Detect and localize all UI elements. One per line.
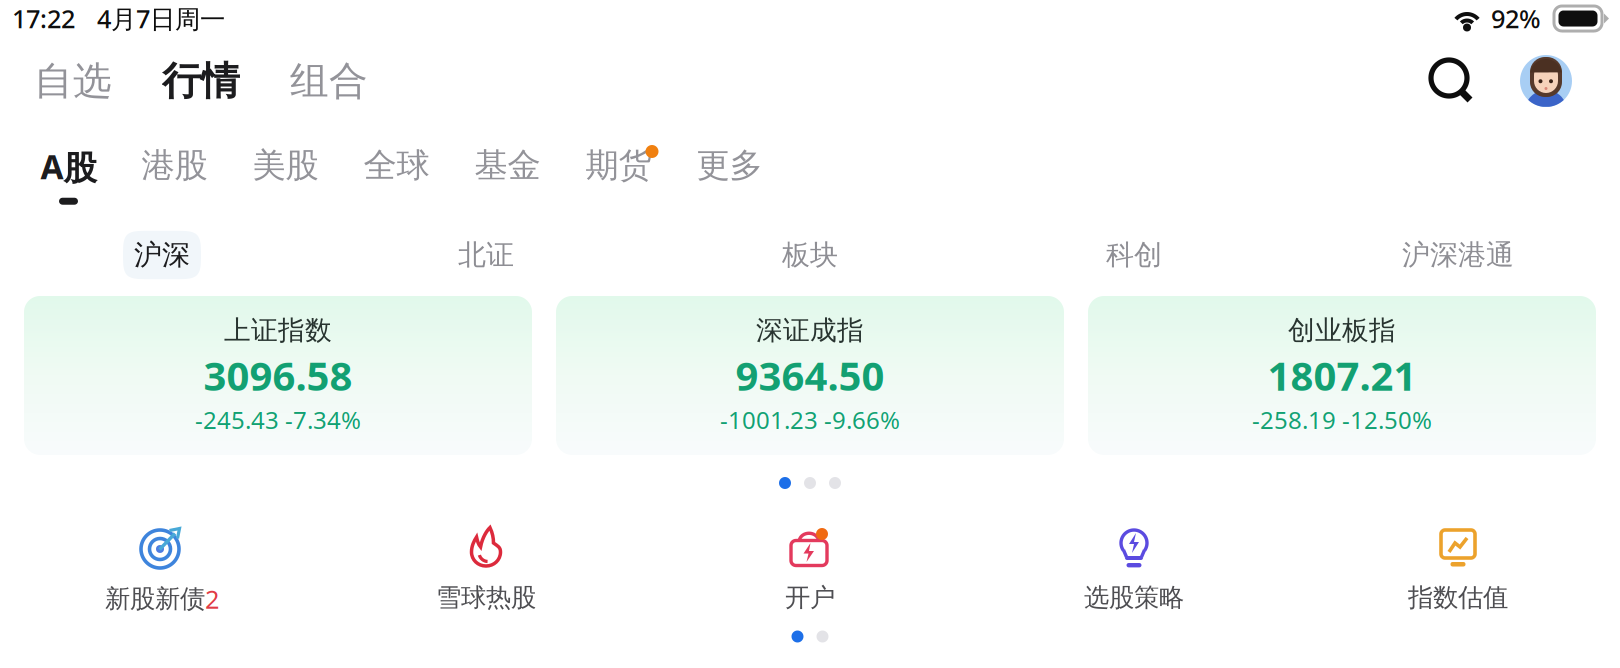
button[interactable]: 北证 — [324, 228, 648, 282]
button[interactable]: 自选 — [34, 49, 112, 113]
button[interactable]: A股 — [18, 113, 119, 205]
button[interactable]: 行情 — [112, 49, 240, 113]
staticText: -245.43 -7.34% — [195, 404, 361, 436]
staticText: 1807.21 — [1267, 349, 1416, 402]
staticText: 港股 — [141, 145, 207, 186]
staticText: 组合 — [290, 57, 368, 105]
button[interactable]: 选股策略 — [972, 520, 1296, 610]
button[interactable]: 科创 — [972, 228, 1296, 282]
button[interactable]: 深证成指 — [556, 296, 1064, 455]
staticText: 北证 — [458, 238, 514, 272]
staticText: 深证成指 — [756, 314, 864, 347]
staticText: 全球 — [363, 145, 429, 186]
staticText: 美股 — [252, 145, 318, 186]
staticText: 行情 — [162, 57, 240, 105]
staticText: 92% — [1491, 2, 1541, 35]
button[interactable]: 沪深 — [0, 228, 324, 282]
staticText: 更多 — [696, 145, 762, 186]
button[interactable]: 期货 — [563, 114, 674, 204]
staticText: 选股策略 — [1084, 582, 1184, 613]
button[interactable]: 美股 — [230, 114, 341, 204]
button[interactable]: 搜索 Search — [1431, 60, 1471, 102]
staticText: 2 — [205, 582, 219, 616]
staticText: 沪深港通 — [1402, 238, 1514, 272]
staticText: 自选 — [34, 57, 112, 105]
staticText: 指数估值 — [1408, 582, 1508, 613]
staticText: 板块 — [782, 238, 838, 272]
staticText: 创业板指 — [1288, 314, 1396, 347]
staticText: 3096.58 — [203, 349, 352, 402]
staticText: 新股新债 — [105, 583, 205, 614]
button[interactable]: 港股 — [119, 114, 230, 204]
staticText: 开户 — [785, 582, 835, 613]
staticText: 4月7日周一 — [97, 2, 225, 35]
button[interactable]: 创业板指 — [1088, 296, 1596, 455]
button[interactable]: 新股新债 — [0, 520, 324, 610]
staticText: 17:22 — [12, 2, 75, 35]
staticText: 沪深 — [134, 238, 190, 272]
staticText: 科创 — [1106, 238, 1162, 272]
button[interactable]: 基金 — [452, 114, 563, 204]
button[interactable]: 个人中心 Profile — [1471, 55, 1572, 107]
staticText: -258.19 -12.50% — [1252, 404, 1432, 436]
staticText: A股 — [40, 144, 96, 189]
staticText: -1001.23 -9.66% — [720, 404, 900, 436]
button[interactable]: 上证指数 — [24, 296, 532, 455]
button[interactable]: 雪球热股 — [324, 520, 648, 610]
button[interactable]: 组合 — [240, 49, 368, 113]
button[interactable]: 更多 — [674, 114, 785, 204]
button[interactable]: 板块 — [648, 228, 972, 282]
button[interactable]: 沪深港通 — [1296, 228, 1620, 282]
staticText: 9364.50 — [735, 349, 884, 402]
staticText: 期货 — [585, 145, 651, 186]
staticText: 基金 — [474, 145, 540, 186]
staticText: 上证指数 — [224, 314, 332, 347]
button[interactable]: 全球 — [341, 114, 452, 204]
staticText: 雪球热股 — [436, 582, 536, 613]
button[interactable]: 开户 — [648, 520, 972, 610]
button[interactable]: 指数估值 — [1296, 520, 1620, 610]
